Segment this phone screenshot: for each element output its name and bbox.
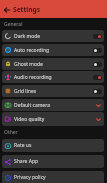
button[interactable]: Dark mode <box>2 30 104 42</box>
button[interactable]: Video quality <box>2 112 104 126</box>
button[interactable]: Rate us <box>2 139 104 152</box>
staticText: General <box>4 21 23 28</box>
button[interactable]: Expand <box>95 116 102 123</box>
button[interactable]: Expand <box>95 102 102 109</box>
staticText: Default camera <box>14 102 50 109</box>
button[interactable]: Ghost mode <box>2 58 104 70</box>
staticText: Ghost mode <box>14 61 43 68</box>
staticText: Grid lines <box>14 88 37 95</box>
button[interactable]: Back <box>2 5 11 14</box>
staticText: Dark mode <box>14 33 41 40</box>
button[interactable]: Share App <box>2 155 104 168</box>
button[interactable]: Off <box>93 62 102 67</box>
staticText: Rate us <box>14 142 32 149</box>
button[interactable]: Default camera <box>2 99 104 111</box>
staticText: Audio recording <box>14 74 52 81</box>
button[interactable]: On <box>93 75 102 80</box>
button[interactable]: Audio recording <box>2 71 104 83</box>
staticText: Privacy policy <box>14 174 46 181</box>
button[interactable]: Off <box>93 48 102 53</box>
button[interactable]: Grid lines <box>2 85 104 97</box>
staticText: Auto recording <box>14 47 50 54</box>
button[interactable]: Auto recording <box>2 44 104 56</box>
staticText: Share App <box>14 158 39 165</box>
button[interactable]: On <box>93 34 102 39</box>
button[interactable]: Privacy policy <box>2 171 104 183</box>
staticText: Other <box>4 129 18 136</box>
staticText: Settings <box>13 5 41 14</box>
button[interactable]: Off <box>93 89 102 94</box>
staticText: Video quality <box>14 116 45 123</box>
